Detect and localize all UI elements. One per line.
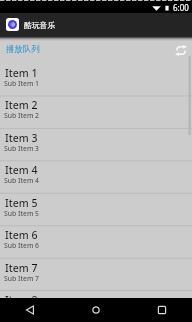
staticText: Item 6 xyxy=(5,228,38,242)
staticText: Sub Item 7 xyxy=(4,274,39,283)
staticText: 播放队列 xyxy=(6,44,40,55)
staticText: Sub Item 2 xyxy=(4,111,39,120)
button[interactable]: Repeat xyxy=(173,42,189,58)
staticText: Item 2 xyxy=(5,98,38,112)
staticText: Item 7 xyxy=(5,261,38,275)
staticText: Sub Item 3 xyxy=(4,144,39,153)
button[interactable]: Back xyxy=(10,298,50,322)
staticText: Sub Item 1 xyxy=(4,79,39,88)
staticText: Sub Item 6 xyxy=(4,241,39,250)
staticText: Sub Item 8 xyxy=(4,306,39,315)
button[interactable]: Item 7 xyxy=(0,259,192,290)
button[interactable]: Item 2 xyxy=(0,96,192,127)
staticText: Item 8 xyxy=(5,293,38,307)
button[interactable]: Recents xyxy=(142,298,182,322)
button[interactable]: Item 3 xyxy=(0,129,192,160)
button[interactable]: Home xyxy=(76,298,116,322)
staticText: 6:00 xyxy=(173,2,189,13)
staticText: Item 3 xyxy=(5,131,38,145)
staticText: Sub Item 4 xyxy=(4,176,39,185)
staticText: Sub Item 5 xyxy=(4,209,39,218)
staticText: Item 4 xyxy=(5,163,38,177)
button[interactable]: Item 1 xyxy=(0,64,192,95)
button[interactable]: Item 8 xyxy=(0,291,192,322)
button[interactable]: Item 6 xyxy=(0,226,192,257)
staticText: Item 5 xyxy=(5,196,38,210)
button[interactable]: Item 5 xyxy=(0,194,192,225)
button[interactable]: Item 4 xyxy=(0,161,192,192)
staticText: 酷玩音乐 xyxy=(24,20,56,30)
staticText: Item 1 xyxy=(5,66,38,80)
